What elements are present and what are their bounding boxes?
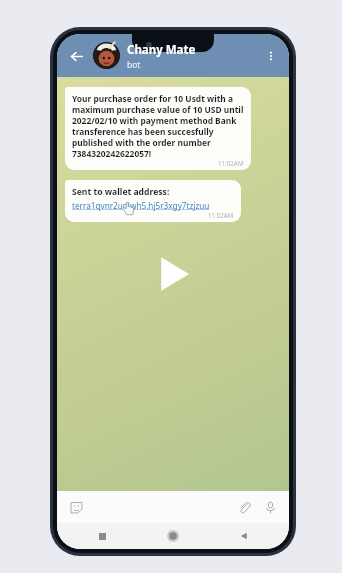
button[interactable]: Play (150, 251, 196, 297)
button[interactable]: Attach (234, 497, 254, 517)
button[interactable]: Recent apps (91, 525, 113, 547)
button[interactable]: Your purchase order for 10 Usdt with a m… (65, 87, 251, 170)
button[interactable]: Stickers (66, 497, 86, 517)
staticText: terra1qvnr2uqlwh5.hj5r3xgy7tzjzuu (72, 200, 210, 211)
staticText: Your purchase order for 10 Usdt with a m… (72, 93, 244, 159)
button[interactable]: terra1qvnr2uqlwh5.hj5r3xgy7tzjzuu (72, 200, 210, 211)
staticText: 11:02AM (218, 159, 244, 167)
button[interactable]: Voice message (260, 497, 280, 517)
staticText: Chany Mate (127, 42, 196, 58)
staticText: bot (127, 59, 141, 71)
staticText: 11:02AM (208, 211, 234, 219)
staticText: Sent to wallet address: (72, 186, 170, 198)
button[interactable]: More options (259, 44, 283, 68)
button[interactable]: Home (162, 525, 184, 547)
button[interactable]: Back (233, 525, 255, 547)
button[interactable]: Sent to wallet address: (65, 180, 241, 222)
button[interactable]: Back (63, 43, 89, 69)
